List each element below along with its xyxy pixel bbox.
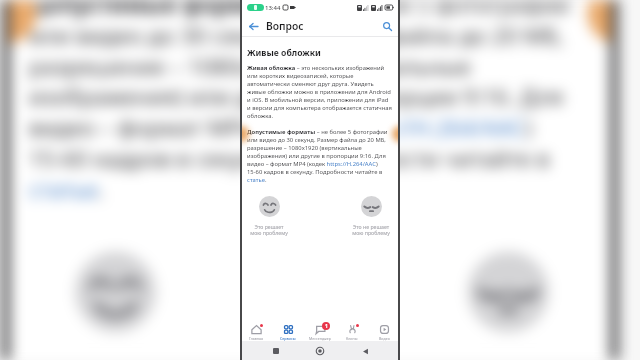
button[interactable]: 1 xyxy=(304,315,336,341)
staticText: 13:44 xyxy=(265,4,281,12)
button[interactable]: Главная xyxy=(240,315,272,341)
staticText: Видео xyxy=(379,336,390,341)
button[interactable]: Это решает мою проблему xyxy=(2,252,225,360)
staticText: Мессенджер xyxy=(309,336,331,341)
button[interactable]: Сервисы xyxy=(272,315,304,341)
button[interactable]: Клипы xyxy=(336,315,368,341)
staticText: Сервисы xyxy=(280,336,296,341)
button[interactable]: Это не решает мою проблему xyxy=(342,196,400,237)
button[interactable]: Search xyxy=(380,19,394,33)
staticText: Вопрос xyxy=(266,19,304,33)
staticText: Допустимые форматы – не более 5 фотограф… xyxy=(247,128,393,184)
button[interactable]: Видео xyxy=(368,315,400,341)
button[interactable]: Это решает мою проблему xyxy=(240,196,298,237)
button[interactable]: Это не решает мою проблему xyxy=(395,252,618,360)
button[interactable]: Back xyxy=(246,19,260,33)
staticText: Живые обложки xyxy=(247,47,321,59)
staticText: 1 xyxy=(325,323,328,330)
staticText: Живая обложка – это нескольких изображен… xyxy=(247,64,393,120)
button[interactable]: Home xyxy=(311,342,329,360)
staticText: Это не решает мою проблему xyxy=(352,223,390,237)
staticText: Клипы xyxy=(346,336,358,341)
staticText: Допустимые форматы – не более 5 фотограф… xyxy=(29,0,591,205)
button[interactable]: Back xyxy=(356,342,374,360)
button[interactable]: Recents xyxy=(267,342,285,360)
staticText: Это решает мою проблему xyxy=(250,223,288,237)
staticText: Главная xyxy=(249,336,264,341)
